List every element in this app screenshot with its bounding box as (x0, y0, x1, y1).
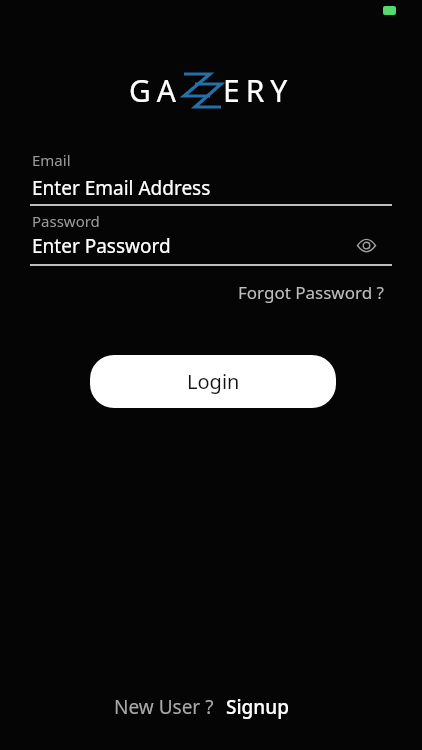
button[interactable]: Forgot Password ? (238, 281, 384, 304)
staticText: Password (32, 211, 100, 231)
staticText: ERY (223, 70, 294, 111)
staticText: New User ? (114, 694, 214, 720)
button[interactable]: Enter Password (32, 233, 171, 259)
staticText: Login (187, 368, 240, 395)
button[interactable]: Signup (226, 694, 289, 720)
staticText: Email (32, 150, 71, 170)
button[interactable]: Enter Email Address (32, 175, 211, 201)
button[interactable]: Login (90, 355, 336, 408)
button[interactable] (357, 239, 376, 252)
staticText: GA (129, 70, 183, 111)
